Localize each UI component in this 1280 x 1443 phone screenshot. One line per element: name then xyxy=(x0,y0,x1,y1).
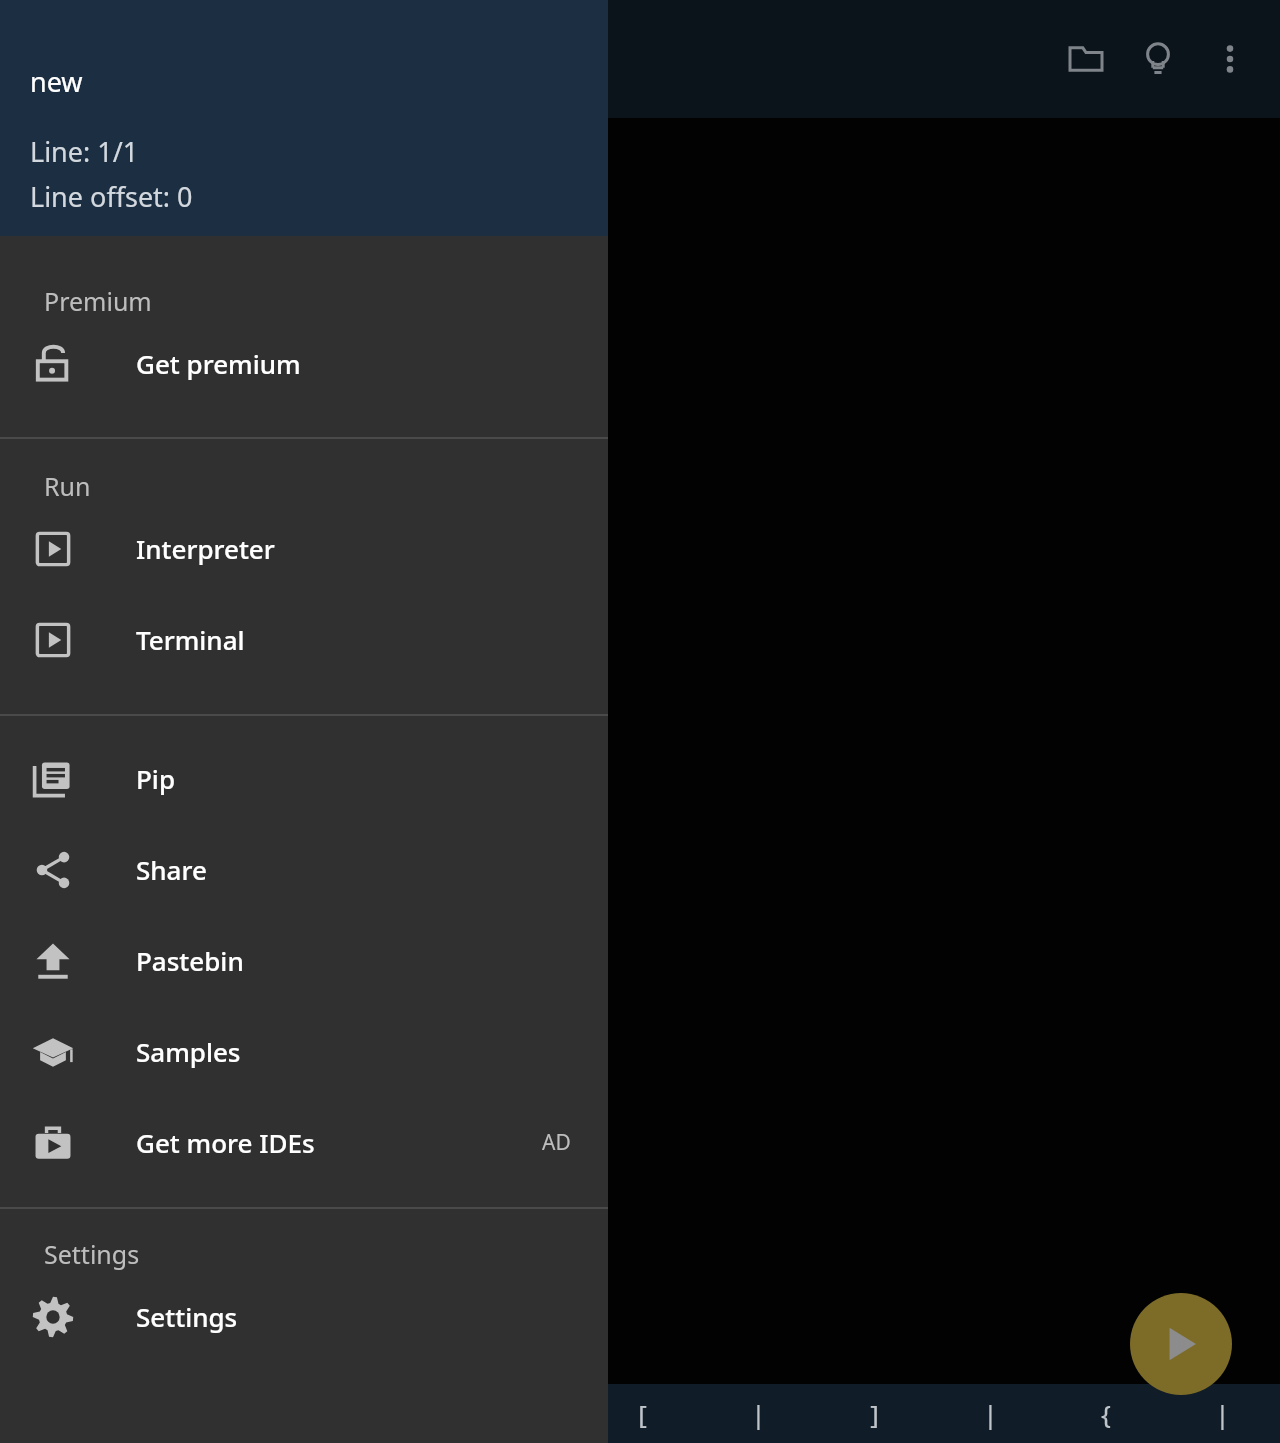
staticText: Get premium xyxy=(136,346,301,381)
button[interactable]: Get more IDEs xyxy=(0,1097,608,1188)
staticText: Pastebin xyxy=(136,943,244,978)
button[interactable]: Pastebin xyxy=(0,915,608,1006)
staticText: Terminal xyxy=(136,622,245,657)
button[interactable]: Pip xyxy=(0,733,608,824)
button[interactable]: Get premium xyxy=(0,318,608,409)
staticText: Settings xyxy=(44,1237,140,1271)
staticText: [ xyxy=(638,1396,647,1431)
button[interactable]: ] xyxy=(816,1384,932,1443)
staticText: Line offset: 0 xyxy=(30,178,193,215)
button[interactable]: Terminal xyxy=(0,594,608,685)
button[interactable]: Run xyxy=(1130,1293,1232,1395)
staticText: AD xyxy=(542,1128,571,1157)
staticText: | xyxy=(751,1396,766,1431)
staticText: | xyxy=(1215,1396,1230,1431)
button[interactable]: Interpreter xyxy=(0,503,608,594)
button[interactable]: Samples xyxy=(0,1006,608,1097)
button[interactable]: new xyxy=(0,0,608,236)
staticText: Settings xyxy=(136,1299,238,1334)
staticText: Run xyxy=(44,469,91,503)
button[interactable]: { xyxy=(1048,1384,1164,1443)
staticText: | xyxy=(983,1396,998,1431)
staticText: new xyxy=(30,63,83,100)
staticText: Samples xyxy=(136,1034,241,1069)
staticText: { xyxy=(1101,1396,1111,1431)
staticText: Line: 1/1 xyxy=(30,133,139,170)
button[interactable]: Settings xyxy=(0,1271,608,1362)
button[interactable]: | xyxy=(700,1384,816,1443)
button[interactable]: [ xyxy=(584,1384,700,1443)
button[interactable]: Share xyxy=(0,824,608,915)
button[interactable]: | xyxy=(932,1384,1048,1443)
button[interactable]: More options xyxy=(1194,23,1266,95)
staticText: ] xyxy=(870,1396,879,1431)
staticText: Premium xyxy=(44,284,152,318)
button[interactable]: Hints xyxy=(1122,23,1194,95)
staticText: Get more IDEs xyxy=(136,1125,315,1160)
button[interactable]: | xyxy=(1164,1384,1280,1443)
staticText: Share xyxy=(136,852,207,887)
staticText: Pip xyxy=(136,761,176,796)
button[interactable]: Open file xyxy=(1050,23,1122,95)
staticText: Interpreter xyxy=(136,531,275,566)
